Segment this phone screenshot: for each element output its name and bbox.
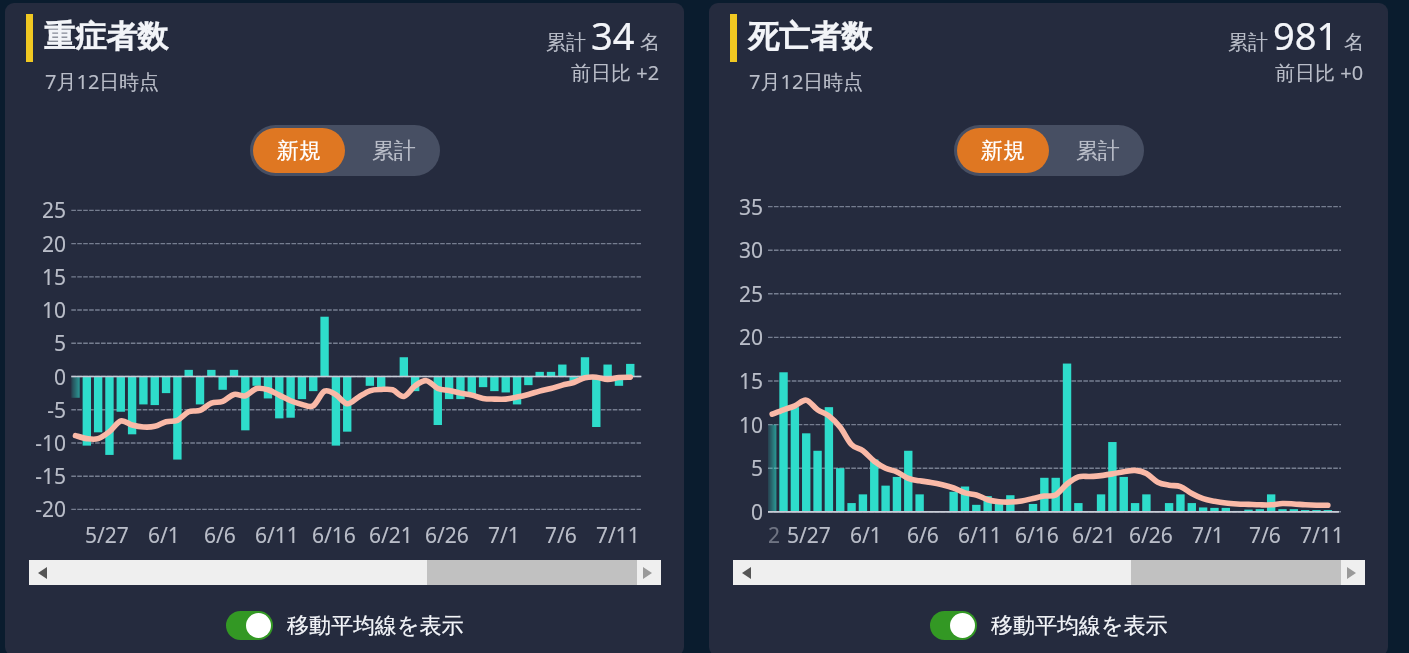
staticText: 死亡者数 xyxy=(748,17,872,56)
staticText: 移動平均線を表示 xyxy=(287,612,464,640)
button[interactable]: Scroll right xyxy=(1347,567,1356,579)
staticText: 6/16 xyxy=(1015,521,1059,550)
staticText: -10 xyxy=(35,429,66,458)
staticText: 981 xyxy=(1273,9,1339,61)
staticText: -20 xyxy=(35,495,66,524)
staticText: 前日比 +0 xyxy=(1275,59,1364,86)
staticText: 25 xyxy=(41,196,66,225)
button[interactable]: 累計 xyxy=(348,125,440,176)
staticText: 6/1 xyxy=(148,521,180,550)
staticText: 30 xyxy=(738,236,763,265)
button[interactable]: 累計 xyxy=(1052,125,1144,176)
staticText: 新規 xyxy=(277,137,321,165)
button[interactable]: Scroll right xyxy=(643,567,652,579)
staticText: 5 xyxy=(53,329,66,358)
staticText: 累計 xyxy=(1228,30,1268,55)
staticText: 15 xyxy=(41,263,66,292)
staticText: 25 xyxy=(738,280,763,309)
staticText: 6/6 xyxy=(204,521,236,550)
staticText: 累計 xyxy=(546,30,586,55)
staticText: 名 xyxy=(1344,30,1364,55)
staticText: 0 xyxy=(750,498,763,527)
staticText: 5/27 xyxy=(787,521,831,550)
staticText: 前日比 +2 xyxy=(571,59,660,86)
staticText: 10 xyxy=(738,411,763,440)
staticText: -15 xyxy=(35,462,66,491)
staticText: 6/11 xyxy=(958,521,1002,550)
staticText: 7/6 xyxy=(1249,521,1281,550)
staticText: 20 xyxy=(41,230,66,259)
staticText: 7/1 xyxy=(1192,521,1224,550)
staticText: 移動平均線を表示 xyxy=(991,612,1168,640)
staticText: 5 xyxy=(750,454,763,483)
staticText: 名 xyxy=(640,30,660,55)
staticText: 6/21 xyxy=(369,521,413,550)
staticText: 6/1 xyxy=(850,521,882,550)
staticText: 7/1 xyxy=(488,521,520,550)
staticText: 重症者数 xyxy=(44,17,168,56)
staticText: 5/27 xyxy=(85,521,129,550)
staticText: 34 xyxy=(591,9,635,61)
staticText: 新規 xyxy=(981,137,1025,165)
staticText: 35 xyxy=(738,193,763,222)
button[interactable]: 移動平均線を表示 xyxy=(930,611,1168,640)
staticText: 6/26 xyxy=(425,521,469,550)
button[interactable]: 新規 xyxy=(957,128,1049,173)
staticText: 7月12日時点 xyxy=(45,68,160,95)
staticText: 6/21 xyxy=(1072,521,1116,550)
staticText: 7/11 xyxy=(596,521,640,550)
staticText: 0 xyxy=(53,363,66,392)
staticText: 15 xyxy=(738,367,763,396)
staticText: 6/16 xyxy=(312,521,356,550)
staticText: 6/26 xyxy=(1129,521,1173,550)
staticText: 6/11 xyxy=(255,521,299,550)
staticText: -5 xyxy=(47,396,66,425)
staticText: 累計 xyxy=(1076,137,1120,165)
button[interactable]: Scroll left xyxy=(38,567,47,579)
staticText: 6/6 xyxy=(907,521,939,550)
staticText: 累計 xyxy=(372,137,416,165)
staticText: 7/11 xyxy=(1300,521,1344,550)
staticText: 7/6 xyxy=(545,521,577,550)
button[interactable]: Scroll left xyxy=(742,567,751,579)
button[interactable]: 新規 xyxy=(253,128,345,173)
button[interactable]: 移動平均線を表示 xyxy=(226,611,464,640)
staticText: 20 xyxy=(738,323,763,352)
staticText: 7月12日時点 xyxy=(749,68,864,95)
staticText: 10 xyxy=(41,296,66,325)
staticText: 2 xyxy=(768,521,781,550)
